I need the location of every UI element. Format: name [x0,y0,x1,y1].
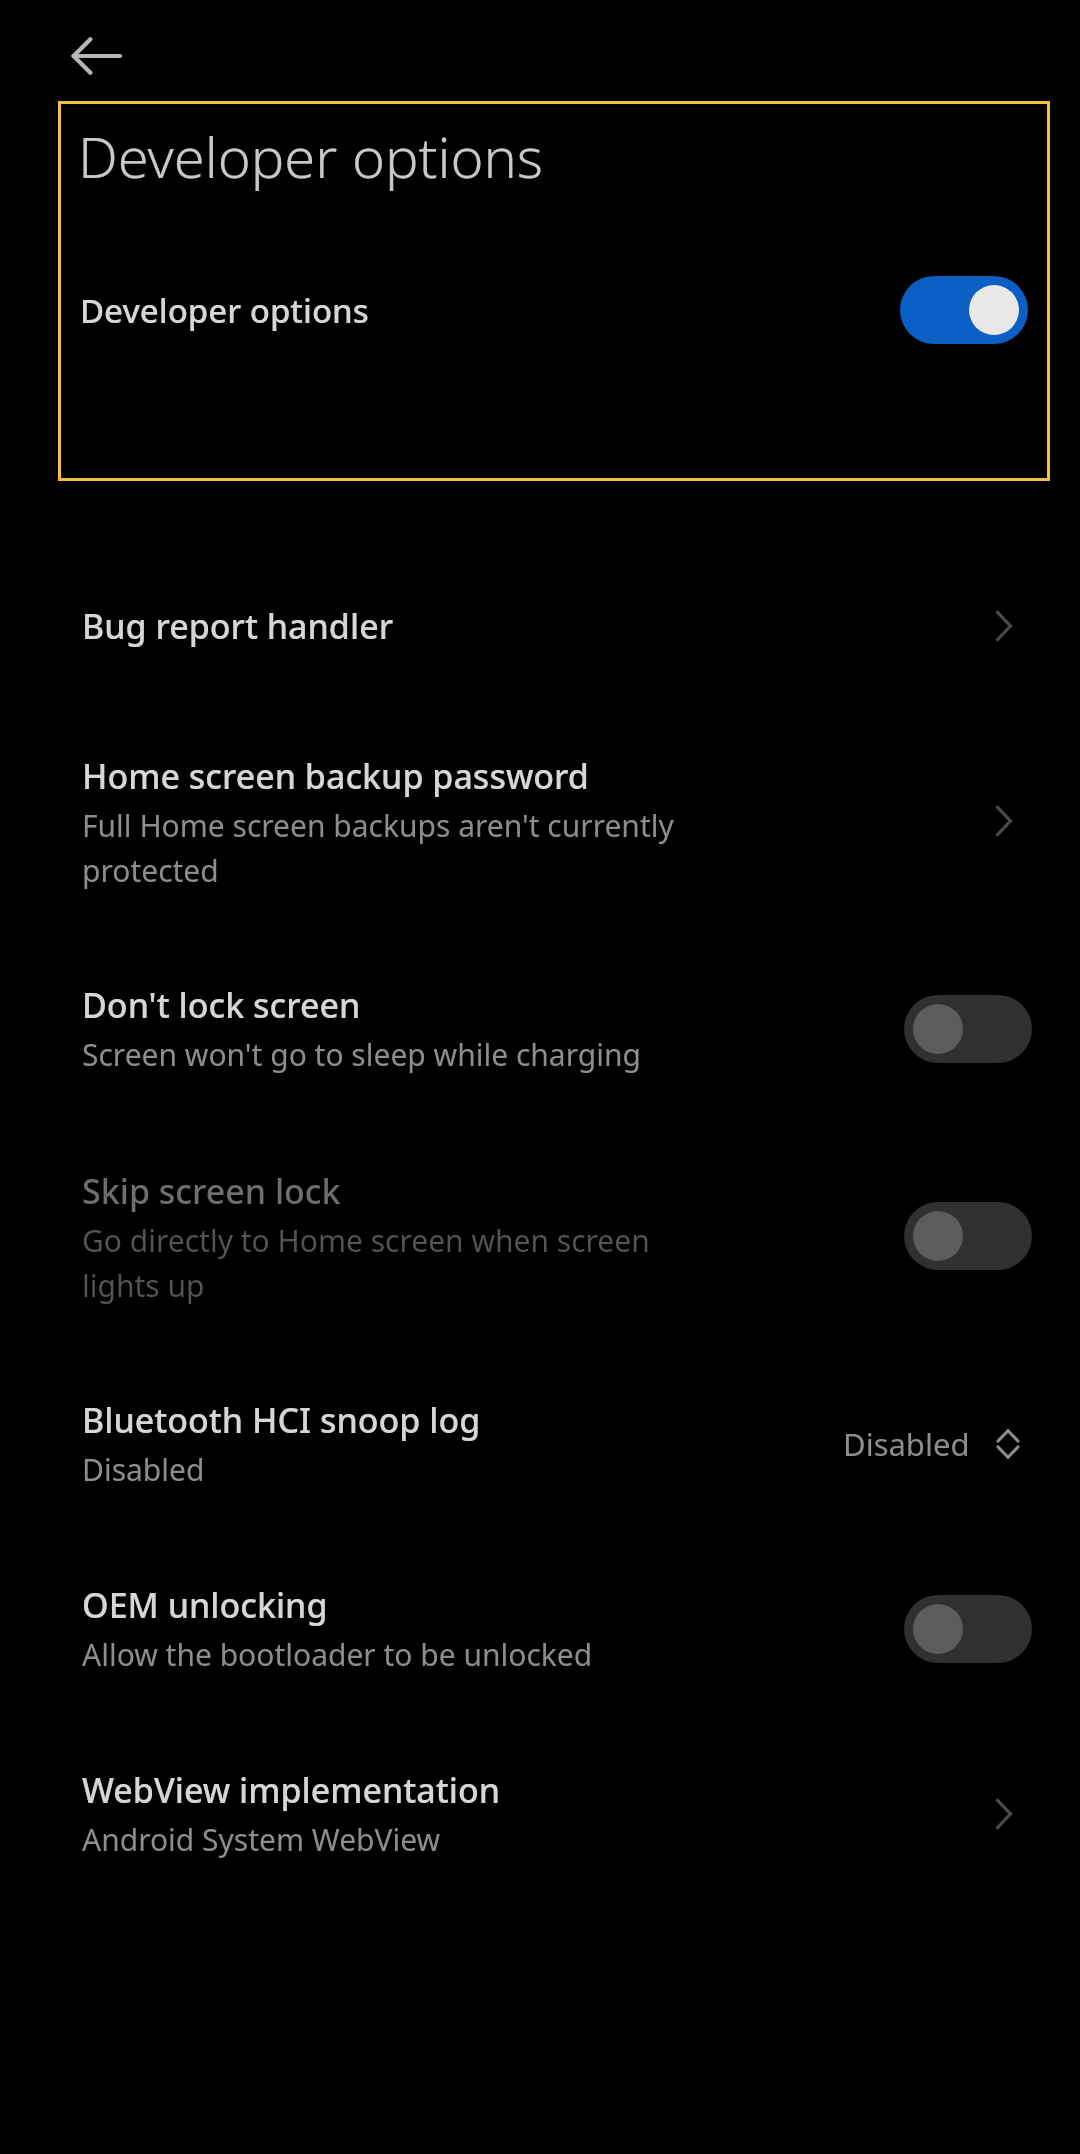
staticText: Allow the bootloader to be unlocked [82,1634,593,1675]
staticText: Developer options [78,118,544,194]
button[interactable]: Toggle off [904,995,1032,1063]
button[interactable]: Open [976,793,1032,849]
button[interactable]: Skip screen lock [0,1121,1080,1351]
button[interactable]: Back [56,16,136,96]
staticText: Screen won't go to sleep while charging [82,1034,641,1075]
button[interactable]: Toggle on [900,276,1028,344]
button[interactable]: WebView implementation [0,1721,1080,1906]
button[interactable]: Toggle off [904,1595,1032,1663]
staticText: OEM unlocking [82,1582,328,1628]
button[interactable]: Bluetooth HCI snoop log [0,1351,1080,1536]
button[interactable]: Open [976,598,1032,654]
button[interactable]: Change value [984,1420,1032,1468]
button[interactable]: Developer options [58,250,1050,370]
staticText: Full Home screen backups aren't currentl… [82,805,674,890]
staticText: Bug report handler [82,603,394,649]
staticText: Don't lock screen [82,982,361,1028]
staticText: Disabled [82,1449,205,1490]
staticText: Developer options [80,288,900,333]
button[interactable]: Bug report handler [0,546,1080,706]
staticText: Skip screen lock [82,1168,341,1214]
staticText: Android System WebView [82,1819,441,1860]
staticText: Bluetooth HCI snoop log [82,1397,481,1443]
staticText: Go directly to Home screen when screen l… [82,1220,650,1305]
staticText: Disabled [843,1423,970,1465]
button[interactable]: OEM unlocking [0,1536,1080,1721]
staticText: WebView implementation [82,1767,501,1813]
button[interactable]: Home screen backup password [0,706,1080,936]
button[interactable]: Open [976,1786,1032,1842]
staticText: Home screen backup password [82,753,589,799]
button[interactable]: Toggle off [904,1202,1032,1270]
button[interactable]: Don't lock screen [0,936,1080,1121]
